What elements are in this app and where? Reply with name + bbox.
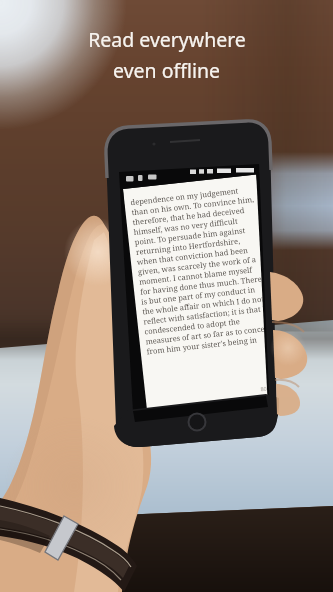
- staticText: the whole affair on which I do not: [142, 293, 265, 317]
- staticText: himself, was no very difficult: [133, 216, 239, 237]
- staticText: reflect with satisfaction; it is that I: [143, 303, 266, 326]
- staticText: from him your sister's being in: [146, 334, 257, 356]
- staticText: when that conviction had been: [136, 245, 249, 267]
- staticText: condescended to adopt the: [144, 316, 240, 336]
- staticText: Read everywhere: [88, 26, 246, 53]
- staticText: than on his own. To convince him,: [131, 194, 254, 217]
- staticText: even offline: [113, 57, 220, 84]
- staticText: returning into Hertfordshire,: [135, 236, 241, 257]
- staticText: measures of art so far as to conceal: [145, 323, 272, 346]
- staticText: for having done thus much. There: [140, 273, 263, 297]
- staticText: therefore, that he had deceived: [132, 205, 245, 227]
- staticText: dependence on my judgement: [130, 185, 239, 207]
- staticText: moment. I cannot blame myself: [139, 264, 253, 287]
- staticText: given, was scarcely the work of a: [137, 254, 257, 277]
- staticText: 80%: [260, 384, 272, 392]
- staticText: point. To persuade him against: [134, 225, 246, 247]
- staticText: is but one part of my conduct in: [141, 284, 256, 307]
